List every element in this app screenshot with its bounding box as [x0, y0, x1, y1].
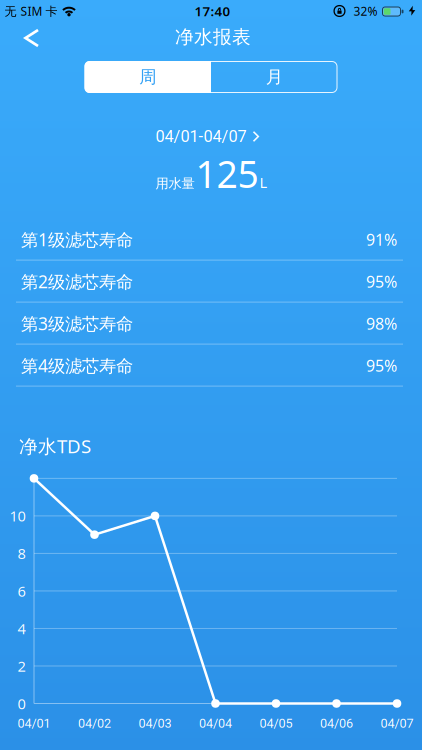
- staticText: 第3级滤芯寿命: [21, 312, 133, 335]
- staticText: 净水TDS: [19, 434, 91, 458]
- staticText: 6: [17, 581, 25, 601]
- staticText: 第1级滤芯寿命: [21, 228, 133, 251]
- staticText: 用水量: [155, 175, 194, 192]
- staticText: 10: [9, 506, 25, 526]
- staticText: 95%: [366, 271, 397, 292]
- staticText: 91%: [366, 229, 397, 250]
- staticText: 0: [17, 694, 25, 713]
- staticText: 04/02: [78, 716, 111, 731]
- staticText: 04/04: [199, 716, 232, 731]
- staticText: 125: [195, 149, 258, 198]
- staticText: L: [259, 173, 267, 192]
- staticText: 第4级滤芯寿命: [21, 354, 133, 377]
- staticText: 第2级滤芯寿命: [21, 270, 133, 293]
- staticText: 无 SIM 卡: [4, 3, 57, 19]
- staticText: 净水报表: [175, 25, 251, 48]
- staticText: 98%: [366, 313, 397, 334]
- button[interactable]: 月: [211, 61, 337, 93]
- button[interactable]: 周: [84, 61, 211, 93]
- staticText: 月: [266, 66, 283, 88]
- staticText: 2: [17, 656, 25, 676]
- staticText: 32%: [353, 3, 377, 19]
- staticText: 04/01: [17, 716, 50, 731]
- staticText: 周: [139, 66, 156, 88]
- staticText: 04/01-04/07: [155, 127, 246, 146]
- button[interactable]: Back: [9, 16, 53, 60]
- button[interactable]: 04/01-04/07: [155, 127, 259, 146]
- staticText: 04/06: [320, 716, 353, 731]
- staticText: 95%: [366, 355, 397, 376]
- staticText: 8: [17, 544, 25, 563]
- staticText: 04/03: [138, 716, 171, 731]
- staticText: 04/05: [259, 716, 292, 731]
- staticText: 04/07: [380, 716, 413, 731]
- staticText: 4: [17, 619, 25, 638]
- staticText: 17:40: [194, 2, 230, 20]
